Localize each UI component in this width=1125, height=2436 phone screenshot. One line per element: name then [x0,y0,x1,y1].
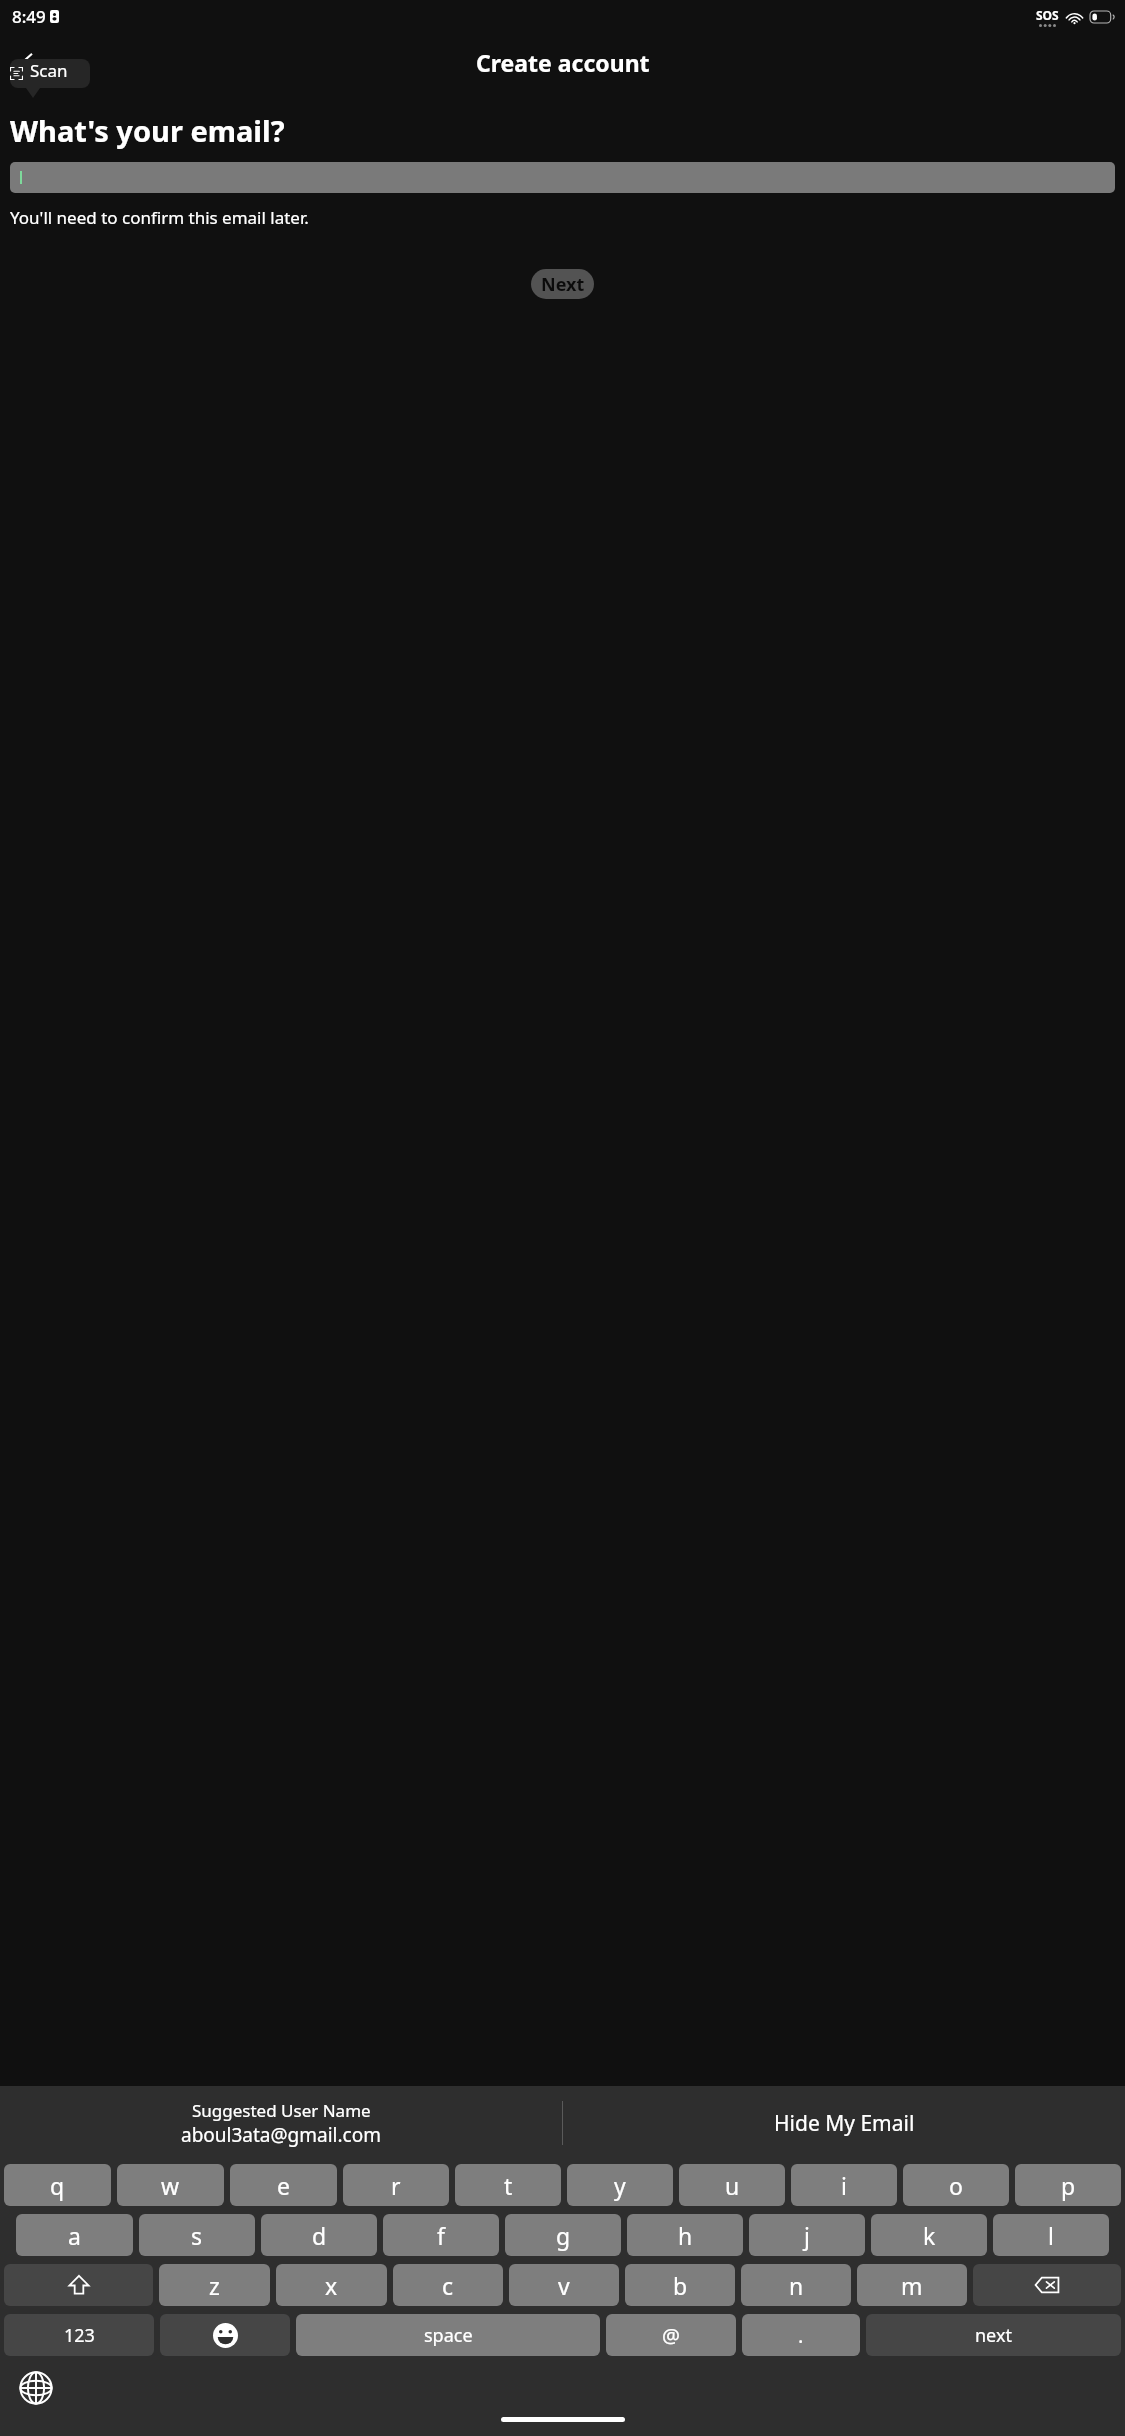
button[interactable]: i [791,2164,897,2206]
staticText: f [437,2220,445,2251]
staticText: v [558,2270,570,2301]
staticText: aboul3ata@gmail.com [181,2122,381,2148]
staticText: SOS [1036,7,1059,23]
staticText: y [614,2170,626,2201]
staticText: z [209,2270,220,2301]
staticText: s [191,2220,203,2251]
button[interactable]: 123 [4,2314,154,2356]
staticText: o [949,2170,963,2201]
button[interactable]: v [509,2264,619,2306]
other: Emoji [213,2323,238,2348]
other: Backspace [1034,2272,1060,2298]
staticText: next [975,2323,1012,2348]
staticText: 123 [64,2323,95,2348]
staticText: d [312,2220,327,2251]
staticText: You'll need to confirm this email later. [10,206,309,229]
staticText: m [901,2270,923,2301]
button[interactable]: j [749,2214,865,2256]
staticText: Scan Text [30,59,90,88]
button[interactable]: u [679,2164,785,2206]
staticText: n [789,2270,804,2301]
button[interactable]: space [296,2314,600,2356]
button[interactable]: Suggested User Name [0,2086,562,2160]
button[interactable] [10,162,1115,193]
button[interactable]: a [16,2214,133,2256]
staticText: space [424,2323,473,2348]
staticText: l [1048,2220,1054,2251]
button[interactable]: y [567,2164,673,2206]
staticText: g [556,2220,571,2251]
button[interactable]: t [455,2164,561,2206]
button[interactable]: r [343,2164,449,2206]
staticText: e [277,2170,290,2201]
button[interactable]: c [393,2264,503,2306]
staticText: w [161,2170,180,2201]
button[interactable]: Hide My Email [563,2086,1125,2160]
button[interactable]: b [625,2264,735,2306]
button[interactable]: Next [531,269,594,299]
button[interactable]: x [276,2264,387,2306]
other: Shift [67,2273,91,2297]
staticText: q [50,2170,65,2201]
staticText: c [442,2270,454,2301]
button[interactable]: Back [4,38,52,86]
button[interactable]: w [117,2164,224,2206]
staticText: h [678,2220,693,2251]
button[interactable]: z [159,2264,270,2306]
button[interactable]: g [505,2214,621,2256]
staticText: What's your email? [10,111,285,150]
button[interactable]: q [4,2164,111,2206]
button[interactable]: s [139,2214,255,2256]
staticText: x [325,2270,338,2301]
button[interactable]: Scan Text [10,59,90,88]
staticText: r [391,2170,401,2201]
staticText: k [923,2220,936,2251]
staticText: Create account [476,47,650,78]
staticText: t [504,2170,513,2201]
button[interactable]: p [1015,2164,1121,2206]
staticText: b [673,2270,688,2301]
staticText: . [798,2322,804,2349]
staticText: u [725,2170,740,2201]
button[interactable]: . [742,2314,860,2356]
staticText: p [1061,2170,1076,2201]
button[interactable]: l [993,2214,1109,2256]
button[interactable]: next [866,2314,1121,2356]
staticText: @ [662,2322,680,2349]
button[interactable]: Shift [4,2264,153,2306]
button[interactable]: n [741,2264,851,2306]
staticText: Next [541,272,585,297]
button[interactable]: @ [606,2314,736,2356]
button[interactable]: m [857,2264,967,2306]
button[interactable]: k [871,2214,987,2256]
staticText: j [804,2220,810,2251]
staticText: 8:49 [12,5,46,28]
button[interactable]: Emoji [160,2314,290,2356]
button[interactable]: Change keyboard language [12,2364,60,2412]
staticText: i [841,2170,847,2201]
staticText: a [68,2220,81,2251]
button[interactable]: o [903,2164,1009,2206]
button[interactable]: Backspace [973,2264,1121,2306]
staticText: Suggested User Name [192,2099,371,2122]
button[interactable]: e [230,2164,337,2206]
button[interactable]: f [383,2214,499,2256]
button[interactable]: h [627,2214,743,2256]
staticText: Hide My Email [774,2109,915,2138]
button[interactable]: d [261,2214,377,2256]
